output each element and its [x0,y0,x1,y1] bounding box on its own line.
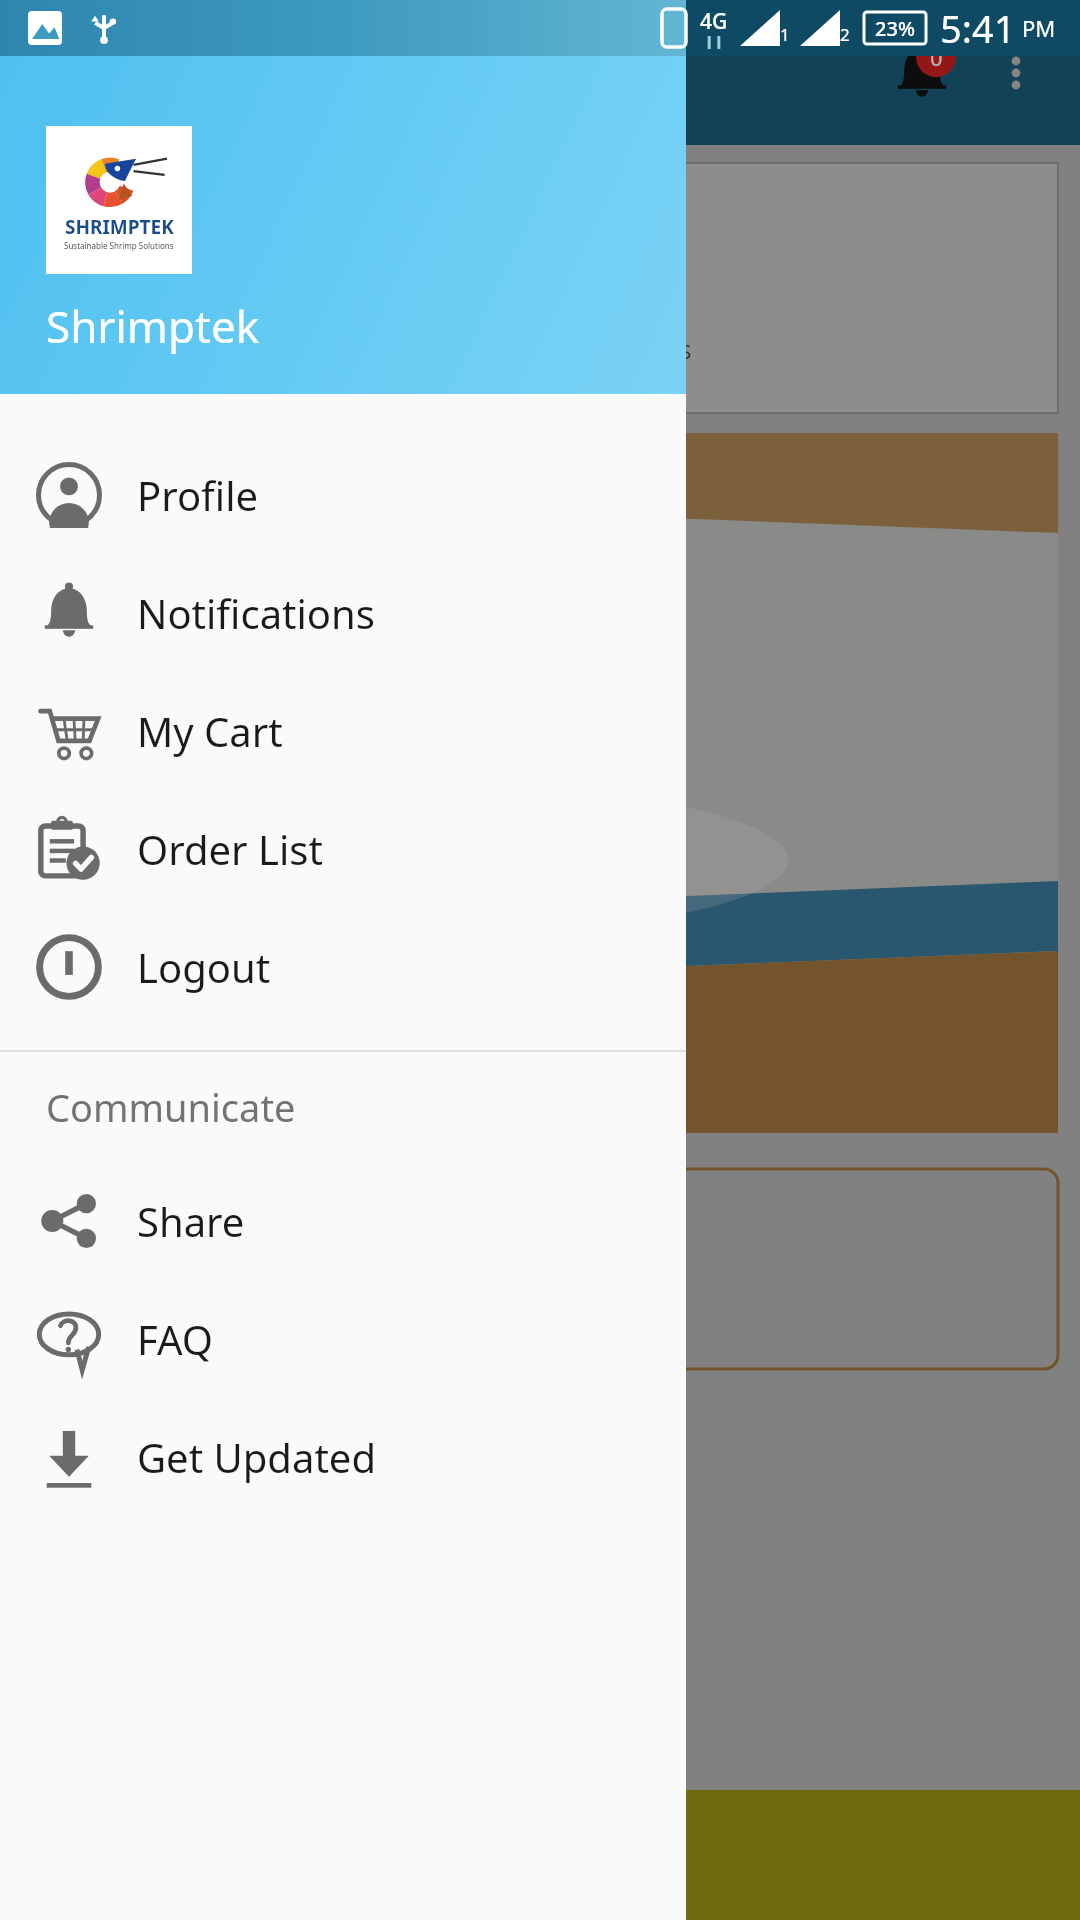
staticText: FAQ [137,1312,213,1366]
staticText: SHRIMPTEK [65,214,174,240]
button[interactable]: Order List [0,790,686,908]
button[interactable]: Share [0,1162,686,1280]
button[interactable]: Profile [0,436,686,554]
staticText: A TATA PRODUCT [457,371,624,398]
button[interactable]: Get Updated [0,1398,686,1516]
staticText: Get Updated [137,1430,376,1484]
staticText: 1 [780,23,790,46]
staticText: ENHANCER FOR SHRIMP PONDS [388,338,692,365]
button[interactable]: Logout [0,908,686,1026]
staticText: 23% [875,15,915,42]
button[interactable]: Notifications [0,554,686,672]
staticText: Logout [137,940,271,994]
button[interactable]: My Cart [0,672,686,790]
staticText: 4G [700,7,728,36]
staticText: 0 [930,42,943,72]
staticText: RALLIS INDIA LIMITED [425,1028,656,1058]
staticText: 2 [840,23,850,46]
staticText: Notifications [137,586,375,640]
staticText: Communicate [46,1081,296,1133]
button[interactable]: Notifications [882,33,962,113]
button[interactable]: More options [980,37,1052,109]
staticText: PM [1022,13,1056,43]
staticText: GreenAqua [412,267,669,330]
staticText: My Cart [137,704,283,758]
staticText: Profile [137,468,259,522]
staticText: 5:41 [940,2,1016,54]
staticText: Shrimptek [46,296,260,356]
button[interactable]: FAQ [0,1280,686,1398]
staticText: Share [137,1194,245,1248]
staticText: Sustainable Shrimp Solutions [64,240,174,251]
staticText: Order List [137,822,323,876]
